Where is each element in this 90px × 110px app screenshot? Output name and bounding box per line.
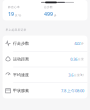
staticText: 行走步数 (13, 41, 29, 46)
staticText: 422 (74, 41, 80, 46)
staticText: 3.6 (68, 72, 73, 77)
staticText: 7.8 上午08:00 (61, 88, 84, 93)
staticText: 次/分 (15, 13, 22, 17)
staticText: 甲状腺素 (13, 88, 29, 93)
button[interactable]: 行走步数 (3, 36, 87, 51)
staticText: 19 (8, 10, 14, 17)
staticText: 早上起床后记录 (5, 28, 26, 31)
staticText: 499 (44, 10, 53, 17)
staticText: 步 (54, 14, 57, 17)
staticText: 总步数 (44, 5, 53, 9)
staticText: 步 (81, 42, 84, 45)
staticText: 公里 (78, 57, 84, 61)
staticText: 平均速度 (13, 72, 29, 77)
staticText: 静息心率 (8, 5, 20, 9)
button[interactable]: 甲状腺素 (3, 83, 87, 98)
staticText: 运动距离 (13, 57, 29, 61)
staticText: 0.36 (70, 56, 77, 62)
button[interactable]: 运动距离 (3, 51, 87, 67)
button[interactable]: 平均速度 (3, 67, 87, 83)
staticText: 公里/时 (74, 73, 84, 77)
